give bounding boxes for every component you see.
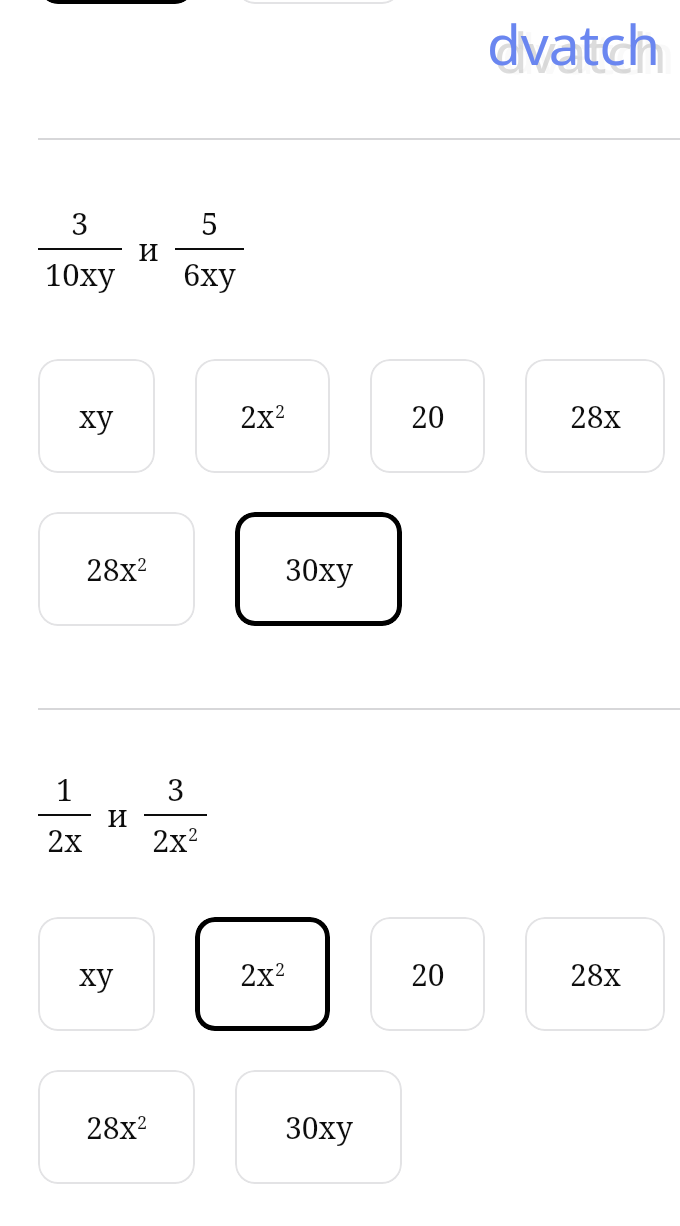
staticText: 2 bbox=[137, 1110, 148, 1135]
button[interactable]: 30xy bbox=[235, 0, 402, 4]
staticText: 2 bbox=[137, 552, 148, 577]
staticText: dvatch bbox=[494, 14, 667, 74]
staticText: 3 bbox=[167, 768, 185, 810]
staticText: dvatch bbox=[502, 15, 675, 75]
staticText: и bbox=[138, 228, 159, 270]
button[interactable]: 2x2 bbox=[195, 359, 330, 473]
button[interactable]: xy bbox=[38, 917, 155, 1031]
staticText: xy bbox=[79, 396, 114, 437]
staticText: 5 bbox=[201, 202, 219, 244]
staticText: 2x bbox=[240, 396, 275, 437]
button[interactable]: 20 bbox=[370, 917, 485, 1031]
staticText: dvatch bbox=[487, 6, 660, 66]
staticText: и bbox=[107, 794, 128, 836]
staticText: 1 bbox=[56, 768, 74, 810]
button[interactable]: 28x2 bbox=[38, 512, 195, 626]
button[interactable]: 20 bbox=[370, 359, 485, 473]
staticText: 20 bbox=[411, 954, 445, 995]
staticText: 20 bbox=[411, 396, 445, 437]
button[interactable]: 28x2 bbox=[38, 1070, 195, 1184]
button[interactable]: 2x2 bbox=[195, 917, 330, 1031]
staticText: xy bbox=[79, 954, 114, 995]
staticText: 28x bbox=[570, 396, 621, 437]
staticText: 2x bbox=[152, 819, 188, 861]
staticText: 3 bbox=[71, 202, 89, 244]
button[interactable]: 30xy bbox=[235, 1070, 402, 1184]
staticText: 2x bbox=[47, 819, 83, 861]
staticText: 6xy bbox=[183, 253, 236, 295]
button[interactable]: 28x2 bbox=[38, 0, 195, 4]
staticText: 2x bbox=[240, 954, 275, 995]
staticText: 2 bbox=[188, 822, 199, 847]
staticText: 30xy bbox=[285, 549, 353, 590]
button[interactable]: 28x bbox=[525, 917, 665, 1031]
staticText: 2 bbox=[275, 957, 286, 982]
button[interactable]: 30xy bbox=[235, 512, 402, 626]
staticText: 10xy bbox=[45, 253, 116, 295]
staticText: 28x bbox=[86, 1107, 137, 1148]
staticText: 28x bbox=[570, 954, 621, 995]
staticText: 30xy bbox=[285, 1107, 353, 1148]
button[interactable]: 28x bbox=[525, 359, 665, 473]
staticText: 2 bbox=[275, 399, 286, 424]
button[interactable]: xy bbox=[38, 359, 155, 473]
staticText: 28x bbox=[86, 549, 137, 590]
